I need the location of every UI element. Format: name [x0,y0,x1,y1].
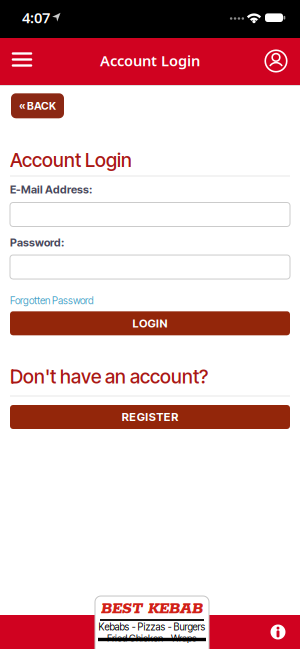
staticText: Account Login [100,51,200,70]
staticText: Password: [10,236,64,249]
staticText: « BACK [19,99,56,112]
button[interactable]: Info [269,623,287,641]
button[interactable]: REGISTER [10,405,290,429]
button[interactable]: E-Mail Address [10,202,290,226]
button[interactable]: Forgotten Password [10,294,94,307]
button[interactable]: Menu [6,43,38,75]
staticText: Fried Chicken - Wraps [107,632,197,644]
button[interactable]: LOGIN [10,311,290,335]
button[interactable]: « BACK [11,93,64,118]
staticText: BEST KEBAB [101,599,203,618]
staticText: E-Mail Address: [10,183,92,196]
staticText: Forgotten Password [10,294,94,307]
staticText: Kebabs - Pizzas - Burgers [98,621,205,633]
staticText: 4:07 [22,8,50,27]
staticText: LOGIN [132,316,167,330]
staticText: Account Login [10,148,132,172]
staticText: Don't have an account? [10,365,208,388]
button[interactable]: Password [10,255,290,279]
button[interactable]: Account [263,48,289,74]
staticText: REGISTER [122,410,178,424]
